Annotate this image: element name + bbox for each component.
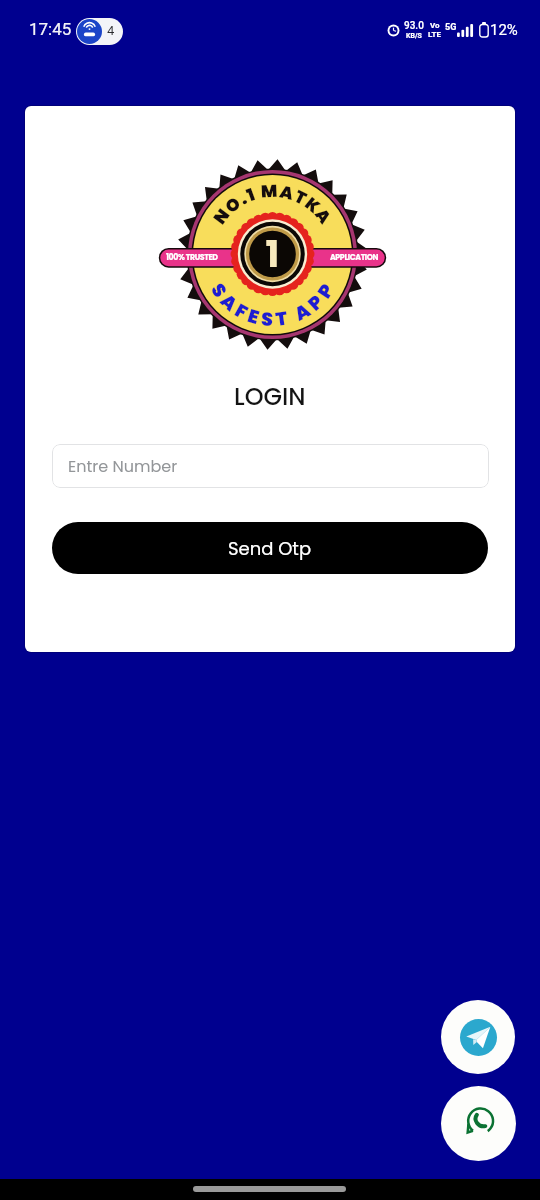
staticText: LOGIN bbox=[234, 380, 306, 414]
staticText: LTE bbox=[428, 30, 441, 39]
staticText: 5G bbox=[445, 22, 457, 33]
staticText: 17:45 bbox=[29, 19, 72, 39]
staticText: 4 bbox=[107, 23, 115, 38]
staticText: 93.0 bbox=[404, 20, 424, 32]
staticText: Send Otp bbox=[228, 536, 312, 561]
staticText: Vo bbox=[430, 21, 440, 30]
staticText: KB/S bbox=[406, 32, 422, 40]
staticText: Entre Number bbox=[68, 455, 178, 477]
button[interactable]: WhatsApp bbox=[441, 1086, 516, 1161]
staticText: 12% bbox=[490, 21, 518, 39]
button[interactable]: Entre Number bbox=[52, 444, 489, 488]
button[interactable]: Send Otp bbox=[52, 522, 488, 574]
button[interactable]: Telegram bbox=[441, 1000, 515, 1074]
